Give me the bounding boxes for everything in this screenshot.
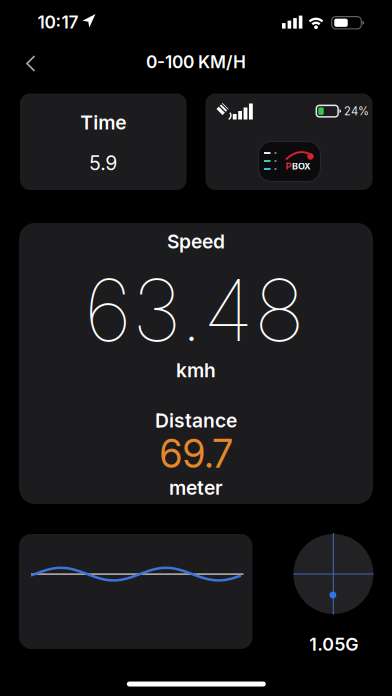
staticText: 63.48 (84, 259, 305, 361)
staticText: 24% (344, 104, 369, 118)
staticText: Speed (167, 230, 225, 253)
staticText: 1.05G (309, 633, 358, 655)
staticText: P (285, 160, 291, 172)
staticText: 5.9 (89, 151, 117, 175)
staticText: kmh (176, 359, 216, 382)
staticText: meter (169, 476, 223, 499)
staticText: 10:17 (37, 12, 78, 33)
staticText: 69.7 (159, 430, 232, 477)
staticText: Distance (155, 409, 237, 432)
staticText: Time (80, 111, 126, 134)
staticText: BOX (292, 161, 311, 172)
staticText: 0-100 KM/H (146, 51, 246, 72)
button[interactable]: Back (6, 42, 50, 84)
